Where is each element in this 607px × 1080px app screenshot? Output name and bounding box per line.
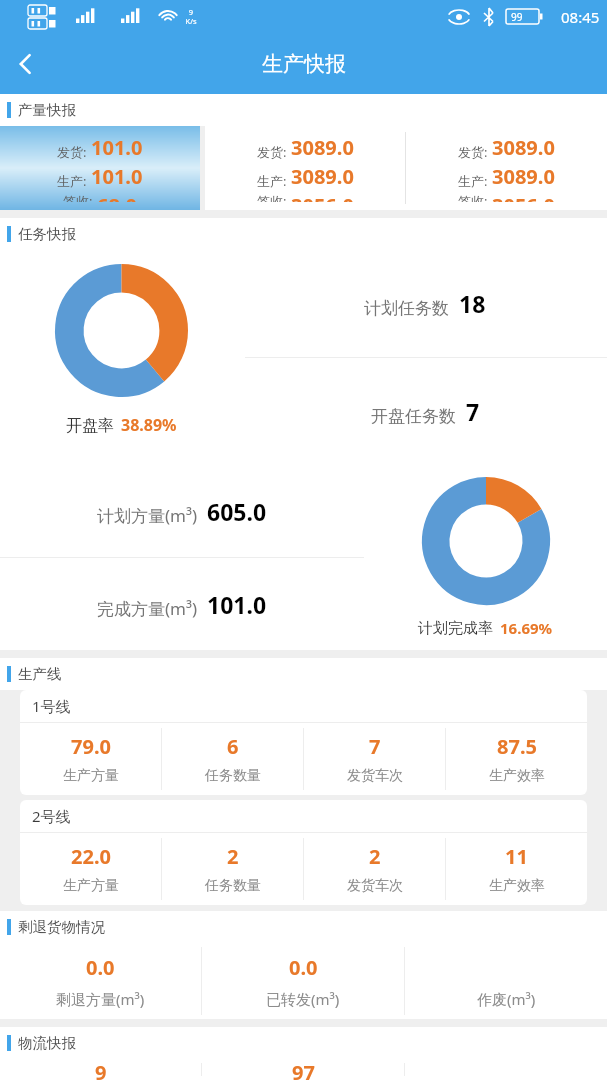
staticText: 101.0	[207, 589, 267, 620]
button[interactable]: 0.0	[0, 943, 201, 1019]
staticText: 3089.0	[291, 134, 354, 161]
staticText: 开盘任务数	[371, 406, 456, 427]
staticText: 3056.0	[291, 192, 354, 202]
button[interactable]: 发货:	[406, 126, 607, 210]
staticText: 2	[227, 843, 239, 870]
staticText: 计划任务数	[364, 298, 449, 319]
staticText: 08:45	[561, 7, 600, 27]
staticText: 97	[292, 1059, 315, 1080]
staticText: 生产:	[57, 172, 87, 190]
staticText: 物流快报	[18, 1034, 76, 1052]
staticText: 生产:	[257, 172, 287, 190]
staticText: 68.0	[97, 192, 137, 202]
staticText: 79.0	[71, 733, 111, 760]
staticText: 发货车次	[347, 877, 403, 895]
button[interactable]: 11	[446, 833, 587, 905]
staticText: 生产线	[18, 665, 62, 683]
button[interactable]: 开盘任务数	[243, 358, 607, 465]
button[interactable]: 22.0	[20, 833, 161, 905]
button[interactable]: 完成方量(m³)	[0, 558, 364, 650]
staticText: 101.0	[91, 163, 143, 190]
staticText: 生产效率	[489, 877, 545, 895]
staticText: 9 K/s	[185, 7, 197, 26]
staticText: 发货:	[257, 143, 287, 161]
staticText: 38.89%	[121, 414, 177, 436]
staticText: 2	[369, 843, 381, 870]
button[interactable]: Back	[0, 38, 52, 90]
staticText: 18	[459, 288, 486, 319]
staticText: 已转发(m³)	[266, 989, 340, 1009]
staticText: 1号线	[32, 696, 71, 716]
button[interactable]: 发货:	[0, 126, 200, 210]
staticText: 6	[227, 733, 239, 760]
button[interactable]: 97	[202, 1059, 404, 1080]
staticText: 7	[466, 396, 480, 427]
staticText: 3089.0	[492, 134, 555, 161]
staticText: 16.69%	[500, 618, 553, 638]
button[interactable]: 7	[304, 723, 445, 795]
staticText: 11	[505, 843, 528, 870]
staticText: 完成方量(m³)	[97, 597, 198, 620]
staticText: 发货:	[57, 143, 87, 161]
button[interactable]: 计划方量(m³)	[0, 465, 364, 557]
staticText: 发货:	[458, 143, 488, 161]
staticText: 剩退方量(m³)	[56, 989, 145, 1009]
staticText: 2号线	[32, 806, 71, 826]
staticText: 7	[369, 733, 381, 760]
button[interactable]: 0.0	[202, 943, 404, 1019]
staticText: 签收:	[63, 192, 93, 202]
staticText: 0.0	[86, 954, 115, 981]
staticText: 生产方量	[63, 877, 119, 895]
staticText: 3089.0	[291, 163, 354, 190]
staticText: 开盘率	[66, 416, 114, 436]
staticText: 剩退货物情况	[18, 918, 105, 936]
staticText: 3089.0	[492, 163, 555, 190]
button[interactable]: 2	[304, 833, 445, 905]
button[interactable]: 发货:	[205, 126, 405, 210]
staticText: 99	[511, 10, 523, 24]
button[interactable]: 79.0	[20, 723, 161, 795]
staticText: 22.0	[71, 843, 111, 870]
staticText: 9	[95, 1059, 107, 1080]
staticText: 发货车次	[347, 767, 403, 785]
staticText: 任务数量	[205, 767, 261, 785]
staticText: 生产:	[458, 172, 488, 190]
staticText: 101.0	[91, 134, 143, 161]
staticText: 0.0	[289, 954, 318, 981]
staticText: 计划方量(m³)	[97, 504, 198, 527]
button[interactable]: 2	[162, 833, 303, 905]
staticText: 任务快报	[18, 225, 76, 243]
staticText: 3056.0	[492, 192, 555, 202]
staticText: 签收:	[257, 192, 287, 202]
staticText: 生产方量	[63, 767, 119, 785]
staticText: 生产效率	[489, 767, 545, 785]
button[interactable]: 6	[162, 723, 303, 795]
button[interactable]: 9	[0, 1059, 201, 1080]
staticText: 605.0	[207, 496, 267, 527]
staticText: 签收:	[458, 192, 488, 202]
staticText: 任务数量	[205, 877, 261, 895]
staticText: 87.5	[497, 733, 537, 760]
button[interactable]: 87.5	[446, 723, 587, 795]
staticText: 作废(m³)	[477, 989, 536, 1009]
staticText: 计划完成率	[418, 619, 493, 638]
staticText: 产量快报	[18, 101, 76, 119]
button[interactable]: 作废(m³)	[405, 943, 607, 1019]
button[interactable]: 计划任务数	[243, 250, 607, 357]
staticText: 生产快报	[262, 51, 346, 77]
